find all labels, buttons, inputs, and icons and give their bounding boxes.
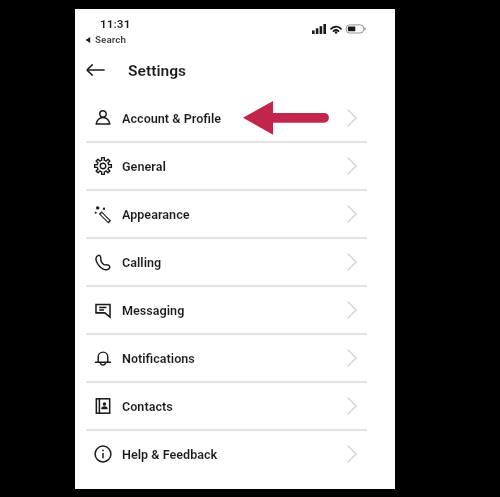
staticText: Account & Profile — [122, 111, 222, 126]
staticText: Appearance — [122, 207, 190, 222]
staticText: General — [122, 159, 166, 174]
button[interactable]: Appearance — [75, 191, 395, 237]
staticText: Help & Feedback — [122, 447, 218, 462]
button[interactable]: Messaging — [75, 287, 395, 333]
button[interactable]: Account & Profile — [75, 95, 395, 141]
button[interactable]: Contacts — [75, 383, 395, 429]
staticText: 11:31 — [100, 17, 131, 31]
button[interactable]: Calling — [75, 239, 395, 285]
button[interactable]: Notifications — [75, 335, 395, 381]
staticText: Messaging — [122, 303, 185, 318]
button[interactable]: Back — [78, 54, 112, 86]
staticText: Contacts — [122, 399, 173, 414]
staticText: Calling — [122, 255, 162, 270]
staticText: Settings — [128, 62, 187, 80]
button[interactable]: Help & Feedback — [75, 431, 395, 477]
button[interactable]: General — [75, 143, 395, 189]
staticText: Search — [95, 34, 126, 46]
staticText: Notifications — [122, 351, 195, 366]
